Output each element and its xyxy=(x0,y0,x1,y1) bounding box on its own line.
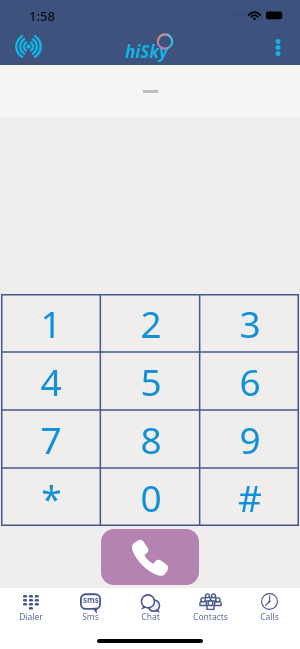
staticText: Chat xyxy=(141,611,160,623)
staticText: 7 xyxy=(40,414,62,464)
staticText: 4 xyxy=(40,356,62,406)
button[interactable]: Chat xyxy=(121,592,179,623)
button[interactable]: 3 xyxy=(200,294,299,352)
staticText: 9 xyxy=(239,414,261,464)
staticText: sms xyxy=(83,594,99,605)
button[interactable]: 7 xyxy=(1,410,101,468)
staticText: Sms xyxy=(82,611,99,623)
staticText: 1:58 xyxy=(29,7,55,25)
button[interactable]: Network status xyxy=(7,31,50,62)
staticText: Contacts xyxy=(193,611,228,623)
staticText: 5 xyxy=(140,356,162,406)
button[interactable]: Dialer xyxy=(2,592,60,623)
button[interactable]: Calls xyxy=(240,592,298,623)
staticText: 8 xyxy=(140,414,162,464)
button[interactable]: 2 xyxy=(101,294,200,352)
staticText: * xyxy=(41,472,62,522)
button[interactable]: 8 xyxy=(101,410,200,468)
button[interactable]: # xyxy=(200,468,299,526)
button[interactable]: 4 xyxy=(1,352,101,410)
staticText: 3 xyxy=(239,298,261,348)
staticText: 6 xyxy=(239,356,261,406)
staticText: 1 xyxy=(40,298,62,348)
staticText: 2 xyxy=(140,298,162,348)
button[interactable]: 5 xyxy=(101,352,200,410)
button[interactable]: sms xyxy=(61,592,119,623)
staticText: 0 xyxy=(140,472,162,522)
staticText: hiSky xyxy=(125,40,168,63)
button[interactable]: 6 xyxy=(200,352,299,410)
button[interactable]: Contacts xyxy=(181,592,239,623)
button[interactable]: Call xyxy=(101,529,199,585)
staticText: Dialer xyxy=(19,611,43,623)
button[interactable]: 0 xyxy=(101,468,200,526)
staticText: Calls xyxy=(260,611,279,623)
button[interactable]: More options xyxy=(262,31,290,63)
button[interactable]: 9 xyxy=(200,410,299,468)
button[interactable]: 1 xyxy=(1,294,101,352)
button[interactable]: * xyxy=(1,468,101,526)
staticText: # xyxy=(238,472,262,522)
